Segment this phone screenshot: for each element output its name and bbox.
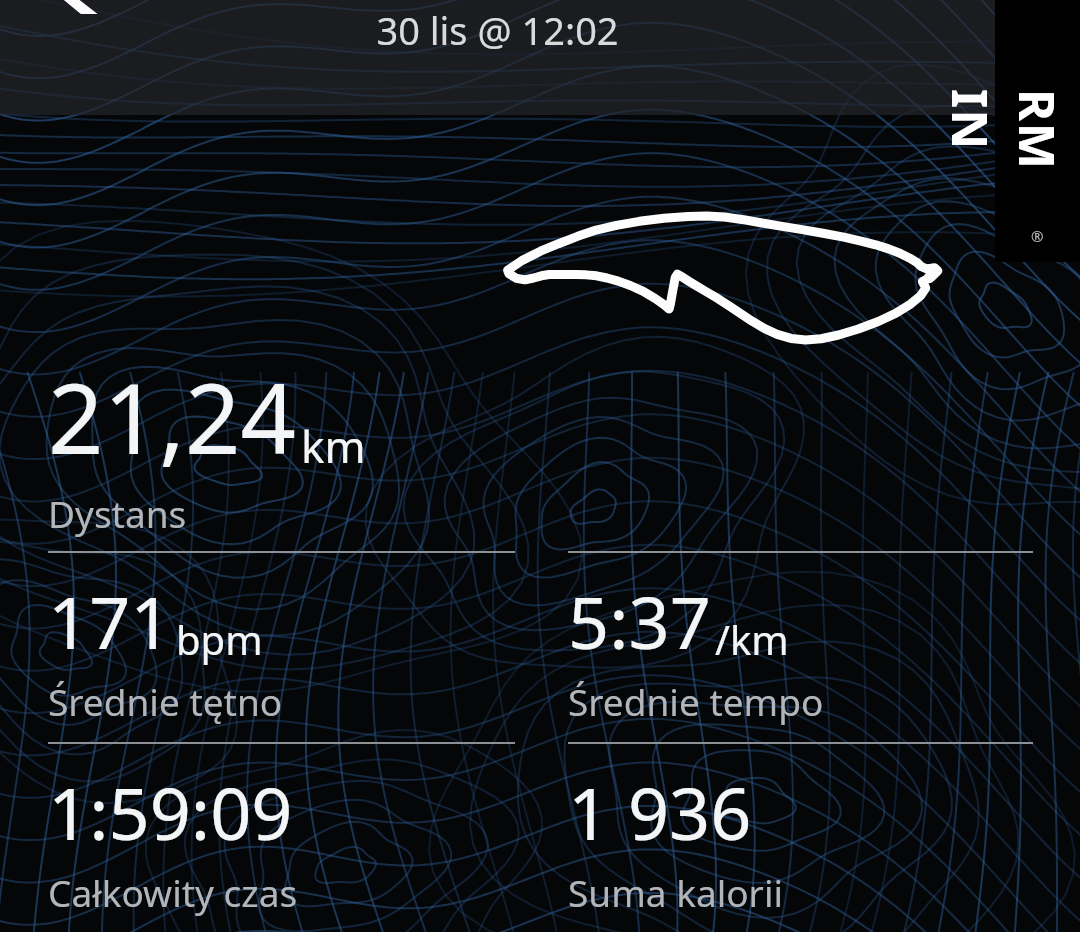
staticText: Suma kalorii xyxy=(568,867,783,917)
staticText: Dystans xyxy=(48,488,187,538)
staticText: Całkowity czas xyxy=(48,867,298,917)
staticText: bpm xyxy=(176,612,263,666)
button[interactable]: Garmin xyxy=(995,0,1080,262)
button[interactable]: 5:37 xyxy=(568,572,824,726)
button[interactable]: 171 xyxy=(48,572,283,726)
staticText: GARMIN xyxy=(937,89,1080,174)
button[interactable]: 1:59:09 xyxy=(48,763,298,917)
button[interactable]: 1 936 xyxy=(568,763,783,917)
staticText: km xyxy=(301,416,366,476)
button[interactable]: 21,24 xyxy=(48,350,366,538)
staticText: 5:37 xyxy=(568,572,711,670)
staticText: Średnie tętno xyxy=(48,676,283,726)
staticText: 21,24 xyxy=(48,350,296,482)
staticText: Średnie tempo xyxy=(568,676,824,726)
staticText: /km xyxy=(715,612,789,666)
staticText: ® xyxy=(1031,226,1044,246)
staticText: 1 936 xyxy=(568,763,752,861)
staticText: 30 lis @ 12:02 xyxy=(376,4,619,56)
staticText: 1:59:09 xyxy=(48,763,293,861)
staticText: 171 xyxy=(48,572,172,670)
